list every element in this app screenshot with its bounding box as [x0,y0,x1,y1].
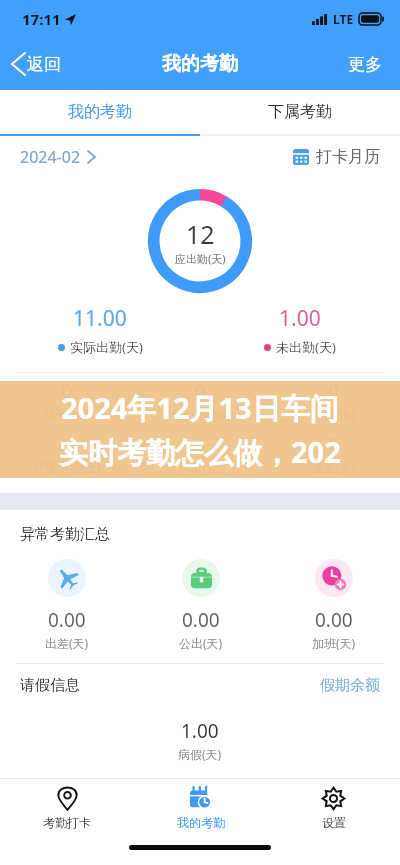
staticText: 下属考勤 [268,102,332,122]
button[interactable]: 0 [267,432,400,485]
other: 公出 [182,559,220,597]
staticText: 早退(次) [312,406,356,422]
button[interactable]: 公出 [134,559,267,651]
button[interactable]: 加班 [267,559,400,651]
staticText: 设置 [322,815,346,830]
staticText: 0 [62,432,73,457]
staticText: 漏签(次) [312,459,356,475]
staticText: 请假信息 [20,676,80,695]
staticText: 0 [195,432,206,457]
staticText: 我的考勤 [162,52,238,76]
staticText: 0 [328,432,339,457]
staticText: 实时考勤怎么做，202 [59,432,341,472]
staticText: 0 [328,379,339,404]
staticText: 出差(天) [45,635,89,651]
button[interactable]: 更多 [330,38,400,90]
staticText: 0 [62,379,73,404]
staticText: 0 [195,379,206,404]
button[interactable]: 考勤打卡 [0,779,134,837]
other: 出差 [48,559,86,597]
button[interactable]: 设置 [267,779,400,837]
button[interactable]: 0 [134,379,267,432]
button[interactable]: 下属考勤 [200,90,400,134]
staticText: 病假(天) [178,746,222,762]
staticText: 1.00 [279,304,321,333]
button[interactable]: 我的考勤 [134,779,267,837]
staticText: 11.00 [73,304,127,333]
staticText: 打卡月历 [316,147,380,167]
staticText: 迟到(次) [45,406,89,422]
staticText: 旷工(次) [179,459,223,475]
other: 加班 [315,559,353,597]
staticText: 返回 [27,54,61,75]
staticText: 12 [186,217,215,251]
staticText: 17:11 [22,9,61,29]
button[interactable]: 出差 [0,559,134,651]
staticText: LTE [333,11,354,27]
staticText: 0.00 [48,607,86,633]
button[interactable]: 假期余额 [320,676,380,695]
staticText: 1.00 [181,718,219,744]
button[interactable]: 0 [267,379,400,432]
staticText: 未出勤(天) [276,338,336,356]
button[interactable]: 0 [0,379,134,432]
staticText: 严重迟到(次) [167,406,235,422]
button[interactable]: 0 [0,432,134,485]
staticText: 公出(天) [179,635,223,651]
button[interactable]: 我的考勤 [0,90,200,134]
button[interactable]: 打卡月历 [293,147,380,167]
staticText: 考勤打卡 [43,815,91,830]
staticText: 应出勤(天) [175,251,226,266]
staticText: 2024年12月13日车间 [61,388,339,428]
staticText: 严重早退(次) [33,459,101,475]
button[interactable]: 2024-02 [20,146,95,168]
staticText: 我的考勤 [68,102,132,122]
button[interactable]: 0 [134,432,267,485]
staticText: 实际出勤(天) [70,338,143,356]
staticText: 0.00 [315,607,353,633]
staticText: 2024-02 [20,146,81,168]
staticText: 加班(天) [312,635,356,651]
button[interactable]: 返回 [0,38,75,90]
staticText: 异常考勤汇总 [20,525,110,544]
staticText: 假期余额 [320,676,380,695]
staticText: 0.00 [182,607,220,633]
staticText: 更多 [348,54,382,75]
staticText: 我的考勤 [177,815,225,830]
